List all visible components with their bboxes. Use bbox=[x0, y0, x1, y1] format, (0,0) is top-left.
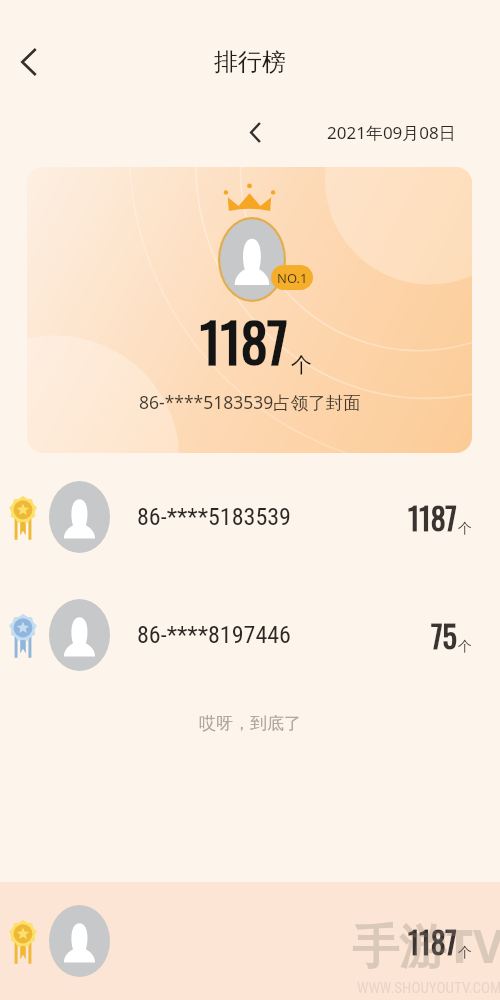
button[interactable]: NO.1 bbox=[27, 167, 472, 453]
button[interactable]: 1187 bbox=[0, 882, 500, 1000]
button[interactable]: Previous day bbox=[238, 115, 272, 149]
staticText: 个 bbox=[291, 352, 312, 378]
staticText: 手游TV bbox=[352, 913, 500, 977]
staticText: 86-****8197446 bbox=[137, 621, 291, 649]
button[interactable]: Back bbox=[6, 39, 52, 85]
staticText: 1187 bbox=[200, 301, 288, 381]
staticText: 个 bbox=[458, 944, 472, 962]
staticText: 排行榜 bbox=[214, 47, 286, 77]
button[interactable]: 86-****5183539 bbox=[0, 458, 500, 576]
staticText: 个 bbox=[458, 520, 472, 538]
staticText: WWW.SHOUYOUTV.COM bbox=[357, 979, 500, 997]
button[interactable]: 86-****8197446 bbox=[0, 576, 500, 694]
staticText: 2021年09月08日 bbox=[327, 121, 456, 144]
staticText: 75 bbox=[431, 613, 457, 657]
staticText: 1187 bbox=[408, 495, 457, 539]
staticText: 86-****5183539占领了封面 bbox=[139, 390, 361, 414]
staticText: 1187 bbox=[408, 919, 457, 963]
staticText: 哎呀，到底了 bbox=[0, 713, 500, 734]
staticText: 86-****5183539 bbox=[137, 503, 291, 531]
staticText: 个 bbox=[458, 638, 472, 656]
staticText: NO.1 bbox=[277, 269, 308, 287]
